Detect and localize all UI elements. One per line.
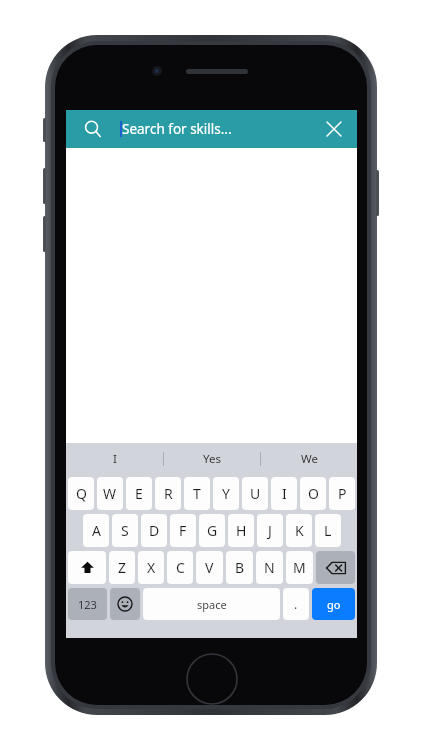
staticText: O: [308, 484, 319, 503]
button[interactable]: V: [196, 551, 223, 584]
button[interactable]: Search: [66, 110, 357, 148]
staticText: E: [135, 484, 143, 503]
button[interactable]: P: [329, 477, 355, 510]
button[interactable]: N: [256, 551, 283, 584]
button[interactable]: L: [315, 514, 341, 547]
staticText: T: [193, 484, 201, 503]
staticText: S: [121, 521, 129, 540]
button[interactable]: space: [143, 588, 280, 620]
button[interactable]: F: [170, 514, 196, 547]
button[interactable]: go: [312, 588, 355, 620]
staticText: K: [295, 521, 304, 540]
staticText: 123: [78, 597, 97, 612]
staticText: A: [92, 521, 101, 540]
button[interactable]: S: [112, 514, 138, 547]
staticText: Yes: [203, 451, 221, 467]
staticText: V: [205, 558, 214, 577]
button[interactable]: K: [286, 514, 312, 547]
button[interactable]: E: [126, 477, 152, 510]
button[interactable]: Emoji: [110, 588, 140, 620]
button[interactable]: I: [271, 477, 297, 510]
staticText: .: [294, 596, 298, 612]
staticText: N: [264, 558, 275, 577]
button[interactable]: J: [257, 514, 283, 547]
button[interactable]: O: [300, 477, 326, 510]
staticText: L: [324, 521, 332, 540]
staticText: I: [113, 451, 117, 467]
button[interactable]: Z: [109, 551, 135, 584]
staticText: R: [164, 484, 173, 503]
staticText: U: [250, 484, 261, 503]
button[interactable]: Shift: [68, 551, 106, 584]
staticText: Y: [222, 484, 230, 503]
button[interactable]: I: [66, 443, 163, 475]
staticText: Q: [76, 484, 87, 503]
button[interactable]: T: [184, 477, 210, 510]
staticText: H: [236, 521, 247, 540]
button[interactable]: Yes: [164, 443, 260, 475]
button[interactable]: Q: [68, 477, 94, 510]
button[interactable]: M: [286, 551, 313, 584]
staticText: F: [179, 521, 187, 540]
staticText: P: [338, 484, 347, 503]
button[interactable]: Backspace: [316, 551, 355, 584]
staticText: C: [176, 558, 185, 577]
staticText: space: [197, 597, 227, 612]
staticText: Search for skills...: [122, 120, 232, 138]
button[interactable]: X: [138, 551, 164, 584]
staticText: Z: [118, 558, 127, 577]
button[interactable]: .: [283, 588, 309, 620]
button[interactable]: R: [155, 477, 181, 510]
button[interactable]: C: [167, 551, 193, 584]
staticText: B: [235, 558, 245, 577]
button[interactable]: H: [228, 514, 254, 547]
staticText: X: [147, 558, 156, 577]
staticText: G: [207, 521, 218, 540]
button[interactable]: Search: [80, 116, 106, 142]
staticText: M: [293, 558, 306, 577]
button[interactable]: 123: [68, 588, 107, 620]
button[interactable]: G: [199, 514, 225, 547]
button[interactable]: We: [261, 443, 357, 475]
button[interactable]: Clear search: [319, 114, 349, 144]
button[interactable]: W: [97, 477, 123, 510]
button[interactable]: B: [226, 551, 253, 584]
staticText: We: [301, 451, 318, 467]
staticText: I: [282, 484, 287, 503]
button[interactable]: Y: [213, 477, 239, 510]
button[interactable]: A: [83, 514, 109, 547]
staticText: W: [103, 484, 117, 503]
staticText: go: [327, 597, 341, 612]
button[interactable]: D: [141, 514, 167, 547]
staticText: J: [268, 521, 272, 540]
button[interactable]: U: [242, 477, 268, 510]
staticText: D: [149, 521, 160, 540]
